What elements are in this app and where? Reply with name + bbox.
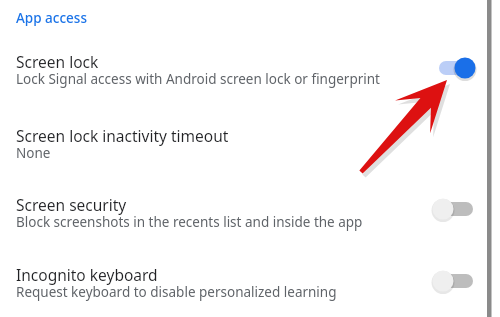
button[interactable] bbox=[0, 255, 480, 303]
button[interactable]: Screen security toggle, off bbox=[433, 194, 477, 224]
button[interactable]: Screen lock toggle, on bbox=[437, 53, 481, 83]
button[interactable]: Incognito keyboard toggle, off bbox=[433, 266, 477, 296]
staticText: Screen lock bbox=[16, 51, 99, 72]
button[interactable] bbox=[0, 4, 200, 32]
staticText: App access bbox=[16, 9, 87, 27]
staticText: None bbox=[16, 144, 51, 162]
staticText: Block screenshots in the recents list an… bbox=[16, 213, 363, 231]
button[interactable] bbox=[0, 42, 480, 90]
staticText: Lock Signal access with Android screen l… bbox=[16, 70, 380, 88]
button[interactable] bbox=[0, 185, 480, 233]
staticText: Screen security bbox=[16, 194, 127, 215]
staticText: Request keyboard to disable personalized… bbox=[16, 283, 337, 301]
button[interactable] bbox=[0, 116, 480, 164]
staticText: Screen lock inactivity timeout bbox=[16, 125, 229, 146]
staticText: Incognito keyboard bbox=[16, 264, 158, 285]
